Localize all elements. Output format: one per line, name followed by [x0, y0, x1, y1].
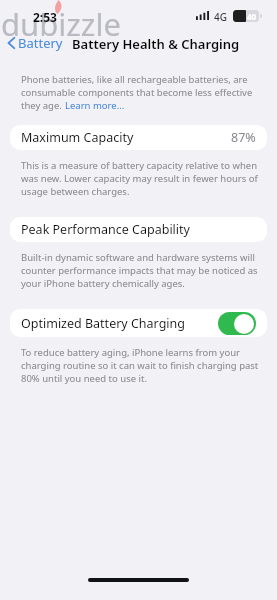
button[interactable]: Maximum Capacity: [10, 125, 267, 150]
staticText: 87%: [231, 129, 256, 146]
staticText: counter performance impacts that may be …: [21, 264, 258, 277]
staticText: your iPhone battery chemically ages.: [21, 277, 185, 290]
staticText: dubizzle: [1, 3, 121, 45]
staticText: Battery: [18, 34, 63, 52]
staticText: usage between charges.: [21, 185, 130, 198]
staticText: was new. Lower capacity may result in fe…: [21, 172, 258, 185]
staticText: 40: [247, 11, 257, 22]
button[interactable]: Optimized Battery Charging toggle, on: [218, 312, 256, 335]
staticText: Optimized Battery Charging: [21, 315, 185, 332]
button[interactable]: Peak Performance Capability: [10, 217, 267, 242]
staticText: 2:53: [33, 9, 57, 25]
button[interactable]: Battery: [0, 31, 69, 55]
button[interactable]: Learn more...: [65, 99, 125, 112]
staticText: Peak Performance Capability: [21, 221, 190, 238]
staticText: Maximum Capacity: [21, 129, 134, 146]
staticText: 80% until you need to use it.: [21, 372, 147, 385]
staticText: Battery Health & Charging: [72, 35, 240, 53]
staticText: This is a measure of battery capacity re…: [21, 159, 259, 172]
staticText: Phone batteries, like all rechargeable b…: [21, 73, 248, 86]
staticText: 4G: [214, 10, 227, 24]
staticText: they age.: [21, 99, 65, 112]
staticText: To reduce battery aging, iPhone learns f…: [21, 346, 259, 359]
staticText: consumable components that become less e…: [21, 86, 261, 99]
staticText: Built-in dynamic software and hardware s…: [21, 251, 265, 264]
button[interactable]: Optimized Battery Charging: [10, 309, 267, 337]
staticText: charging routine so it can wait to finis…: [21, 359, 259, 372]
